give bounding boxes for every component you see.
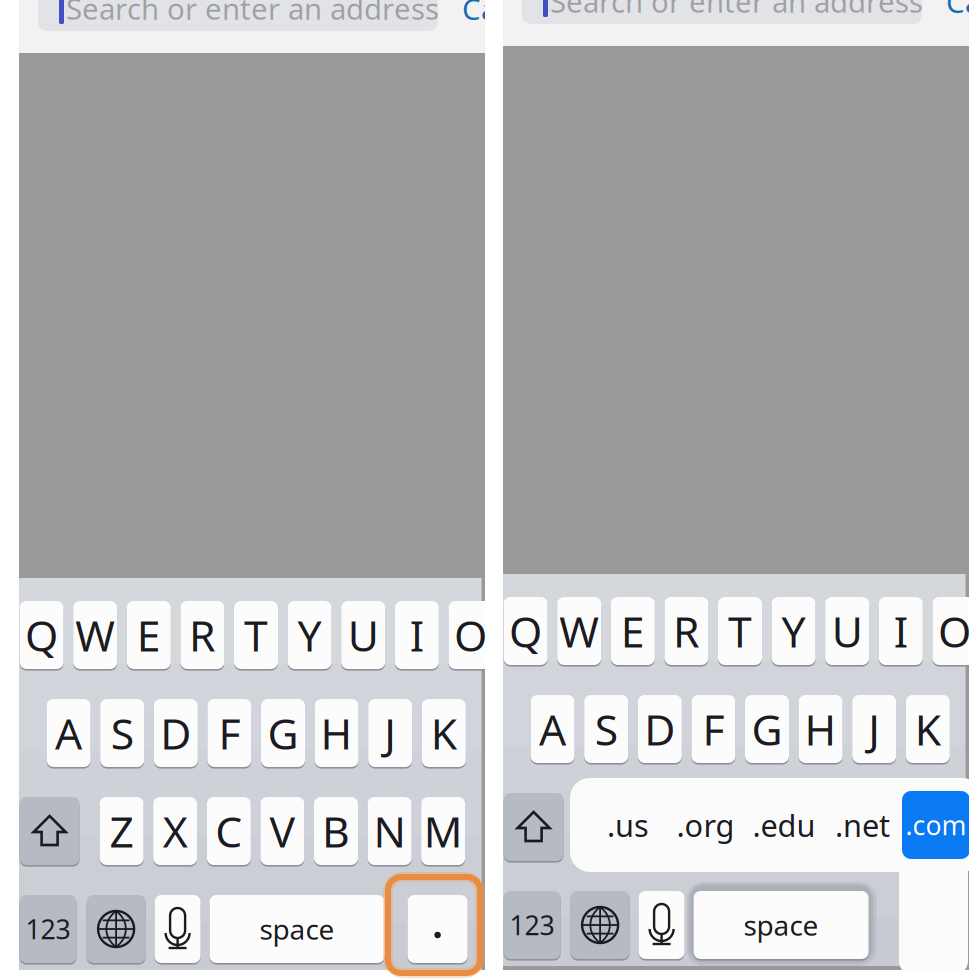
button[interactable]: H (799, 695, 843, 763)
staticText: J (384, 705, 396, 761)
staticText: D (160, 705, 191, 761)
staticText: .us (607, 805, 649, 845)
staticText: X (647, 799, 672, 855)
staticText: .net (835, 805, 890, 845)
button[interactable]: G (745, 695, 789, 763)
button[interactable]: Shift (504, 793, 564, 861)
staticText: .org (676, 805, 734, 845)
button[interactable]: Next keyboard (571, 891, 630, 959)
button[interactable]: U (341, 601, 385, 669)
button[interactable]: R (180, 601, 224, 669)
button[interactable]: C (207, 797, 251, 865)
button[interactable]: J (368, 699, 412, 767)
button[interactable]: V (744, 793, 788, 861)
staticText: B (322, 803, 350, 859)
staticText: F (702, 701, 724, 757)
button[interactable]: I (879, 597, 923, 665)
staticText: O (454, 607, 487, 663)
button[interactable]: D (154, 699, 198, 767)
staticText: E (621, 603, 645, 659)
button[interactable]: Period (408, 895, 468, 963)
button[interactable]: Z (584, 793, 628, 861)
button[interactable]: M (905, 793, 949, 861)
button[interactable]: S (100, 699, 144, 767)
button[interactable]: X (637, 793, 681, 861)
button[interactable]: A (47, 699, 91, 767)
button[interactable]: C (691, 793, 735, 861)
button[interactable]: space (210, 895, 385, 963)
button[interactable]: S (584, 695, 628, 763)
button[interactable]: Dictation (639, 891, 685, 959)
button[interactable]: .org (666, 778, 745, 872)
staticText: U (832, 603, 863, 659)
button[interactable]: T (718, 597, 762, 665)
staticText: V (269, 803, 295, 859)
button[interactable]: G (261, 699, 305, 767)
staticText: H (805, 701, 837, 757)
button[interactable]: E (611, 597, 655, 665)
button[interactable]: H (315, 699, 359, 767)
staticText: G (267, 705, 298, 761)
staticText: G (751, 701, 782, 757)
button[interactable]: B (798, 793, 842, 861)
button[interactable]: Z (100, 797, 144, 865)
button[interactable]: space (694, 891, 869, 959)
staticText: Cancel (462, 0, 554, 28)
staticText: D (644, 701, 675, 757)
button[interactable]: F (207, 699, 251, 767)
button[interactable]: I (395, 601, 439, 669)
staticText: space (744, 906, 819, 944)
button[interactable]: 123 (20, 895, 77, 963)
button[interactable]: .edu (745, 778, 823, 872)
button[interactable]: N (368, 797, 412, 865)
button[interactable]: E (127, 601, 171, 669)
button[interactable]: Dictation (155, 895, 201, 963)
button[interactable]: Shift (20, 797, 80, 865)
staticText: Search or enter an address (550, 0, 923, 21)
staticText: Y (298, 607, 322, 663)
button[interactable]: M (421, 797, 465, 865)
staticText: O (938, 603, 971, 659)
button[interactable]: Cancel (946, 0, 980, 24)
button[interactable]: X (153, 797, 197, 865)
button[interactable]: B (314, 797, 358, 865)
staticText: 123 (26, 911, 71, 947)
button[interactable]: R (664, 597, 708, 665)
staticText: W (559, 603, 599, 659)
button[interactable]: D (638, 695, 682, 763)
button[interactable]: F (691, 695, 735, 763)
button[interactable]: J (852, 695, 896, 763)
button[interactable]: Cancel (462, 0, 552, 31)
staticText: U (348, 607, 379, 663)
button[interactable]: W (557, 597, 601, 665)
button[interactable]: Next keyboard (87, 895, 146, 963)
button[interactable]: U (825, 597, 869, 665)
staticText: T (728, 603, 752, 659)
button[interactable]: A (531, 695, 575, 763)
button[interactable]: K (906, 695, 950, 763)
button[interactable]: T (234, 601, 278, 669)
button[interactable]: O (932, 597, 976, 665)
button[interactable]: O (448, 601, 492, 669)
button[interactable]: Y (772, 597, 816, 665)
button[interactable]: N (852, 793, 896, 861)
staticText: Search or enter an address (66, 0, 439, 28)
staticText: J (868, 701, 880, 757)
staticText: X (163, 803, 188, 859)
button[interactable]: K (422, 699, 466, 767)
button[interactable]: Q (504, 597, 548, 665)
button[interactable]: .net (823, 778, 902, 872)
staticText: N (858, 799, 890, 855)
staticText: R (673, 603, 700, 659)
button[interactable]: .us (590, 778, 666, 872)
button[interactable]: .com (902, 778, 970, 872)
staticText: S (111, 705, 134, 761)
staticText: V (753, 799, 779, 855)
button[interactable]: Y (288, 601, 332, 669)
button[interactable]: Q (20, 601, 64, 669)
button[interactable]: W (73, 601, 117, 669)
staticText: W (75, 607, 115, 663)
button[interactable]: V (260, 797, 304, 865)
button[interactable]: 123 (504, 891, 561, 959)
staticText: C (699, 799, 726, 855)
